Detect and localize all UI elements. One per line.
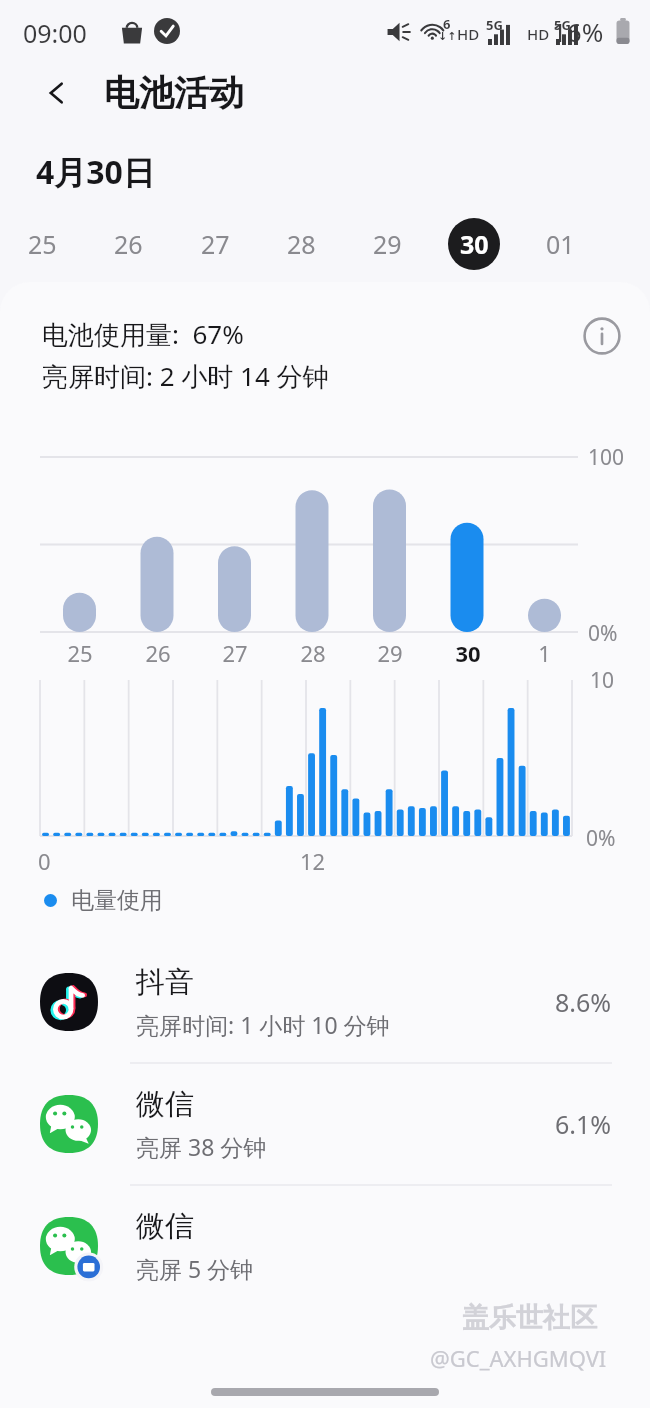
button[interactable]: 27 (189, 218, 241, 270)
button[interactable]: 26 (102, 218, 154, 270)
staticText: 亮屏时间: 2 小时 14 分钟 (42, 358, 329, 394)
staticText: 28 (287, 227, 316, 261)
staticText: 30 (455, 638, 481, 668)
staticText: 盖乐世社区 (462, 1301, 597, 1335)
staticText: 09:00 (23, 16, 87, 50)
button[interactable]: 抖音 (0, 942, 650, 1064)
staticText: 电池活动 (104, 71, 244, 115)
staticText: 亮屏 38 分钟 (136, 1131, 267, 1162)
button[interactable]: 微信 (0, 1064, 650, 1186)
staticText: 1 (538, 638, 551, 668)
staticText: 5G (554, 16, 571, 34)
button[interactable]: Back (34, 70, 80, 116)
staticText: 10 (590, 666, 615, 695)
staticText: 微信 (136, 1208, 194, 1245)
staticText: 抖音 (136, 964, 194, 1001)
staticText: HD (457, 24, 480, 44)
staticText: 26 (114, 227, 143, 261)
staticText: 电池使用量: 67% (42, 316, 244, 352)
staticText: 25 (28, 227, 57, 261)
staticText: 27 (222, 638, 248, 668)
staticText: 4月30日 (36, 150, 155, 194)
staticText: 30 (460, 227, 489, 261)
button[interactable]: Information (578, 312, 626, 360)
staticText: 亮屏 5 分钟 (136, 1253, 254, 1284)
button[interactable]: 29 (361, 218, 413, 270)
staticText: 01 (546, 227, 575, 261)
button[interactable]: 25 (16, 218, 68, 270)
staticText: @GC_AXHGMQVI (430, 1343, 607, 1373)
staticText: 电量使用 (71, 886, 163, 915)
staticText: 5G (486, 16, 503, 34)
staticText: 26 (145, 638, 171, 668)
staticText: 0 (38, 846, 51, 876)
staticText: 29 (373, 227, 402, 261)
staticText: 25 (67, 638, 93, 668)
staticText: 12 (300, 846, 326, 876)
staticText: 8.6% (555, 985, 612, 1019)
button[interactable]: 30 (448, 218, 500, 270)
staticText: ↓↑ (438, 30, 457, 43)
staticText: 6.1% (555, 1107, 612, 1141)
button[interactable]: 28 (275, 218, 327, 270)
staticText: 100 (588, 443, 625, 472)
staticText: 0% (586, 824, 616, 853)
staticText: 27 (201, 227, 230, 261)
staticText: 微信 (136, 1086, 194, 1123)
staticText: HD (527, 24, 550, 44)
staticText: 16% (552, 14, 604, 49)
staticText: 0% (588, 619, 618, 648)
staticText: 29 (377, 638, 403, 668)
staticText: 28 (300, 638, 326, 668)
staticText: 亮屏时间: 1 小时 10 分钟 (136, 1009, 390, 1040)
button[interactable]: 01 (534, 218, 586, 270)
staticText: 6 (443, 15, 451, 33)
button[interactable]: 微信 (0, 1186, 650, 1306)
